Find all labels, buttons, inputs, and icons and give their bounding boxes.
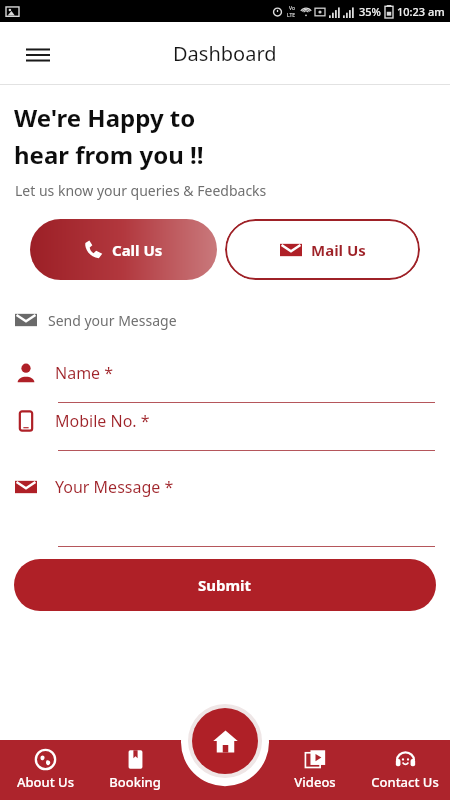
staticText: Contact Us: [371, 773, 439, 791]
button[interactable]: Mail Us: [225, 219, 420, 280]
staticText: Your Message *: [55, 476, 174, 498]
staticText: We're Happy to: [14, 101, 196, 134]
staticText: Submit: [198, 575, 252, 595]
staticText: Call Us: [112, 240, 163, 260]
button[interactable]: Submit: [14, 559, 436, 611]
button[interactable]: Booking: [90, 745, 180, 795]
staticText: Dashboard: [173, 40, 277, 67]
staticText: LTE: [287, 12, 296, 19]
staticText: Mail Us: [311, 240, 366, 260]
staticText: Vo: [289, 5, 295, 12]
staticText: Name *: [55, 362, 114, 384]
staticText: Mobile No. *: [55, 410, 150, 432]
staticText: Send your Message: [48, 311, 177, 330]
button[interactable]: Contact Us: [360, 745, 450, 795]
button[interactable]: Your Message *: [0, 476, 450, 547]
button[interactable]: Name *: [0, 362, 450, 403]
staticText: 10:23 am: [397, 4, 445, 19]
staticText: Videos: [294, 773, 336, 791]
staticText: hear from you !!: [14, 138, 204, 171]
staticText: Let us know your queries & Feedbacks: [15, 181, 267, 200]
staticText: About Us: [17, 773, 74, 791]
button[interactable]: About Us: [0, 745, 90, 795]
button[interactable]: Videos: [270, 745, 360, 795]
button[interactable]: Call Us: [30, 219, 217, 280]
button[interactable]: Open navigation menu: [18, 34, 58, 74]
staticText: Booking: [109, 773, 161, 791]
button[interactable]: Mobile No. *: [0, 410, 450, 451]
button[interactable]: Home: [192, 708, 258, 774]
staticText: 35%: [359, 4, 381, 19]
